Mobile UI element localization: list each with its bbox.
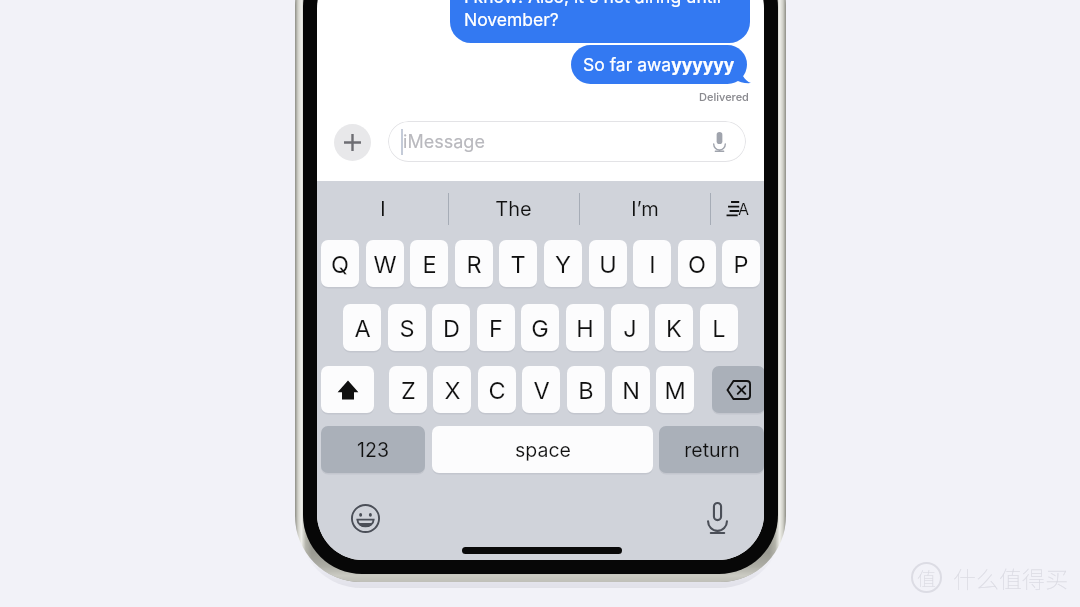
button[interactable]: Y [544, 240, 582, 287]
button[interactable]: Shift [321, 366, 374, 413]
button[interactable]: H [566, 304, 604, 351]
staticText: Q [331, 250, 349, 278]
button[interactable]: iMessage [388, 121, 746, 162]
button[interactable]: Q [321, 240, 359, 287]
button[interactable]: S [388, 304, 426, 351]
button[interactable]: I [317, 181, 448, 236]
button[interactable]: E [410, 240, 448, 287]
staticText: 值 [917, 564, 937, 592]
button[interactable]: O [678, 240, 716, 287]
button[interactable]: The [448, 181, 579, 236]
button[interactable]: R [455, 240, 493, 287]
button[interactable]: 123 [321, 426, 425, 473]
staticText: H [576, 314, 594, 342]
button[interactable]: W [366, 240, 404, 287]
button[interactable]: Delete [712, 366, 764, 413]
staticText: V [533, 376, 550, 404]
staticText: Delivered [699, 90, 749, 103]
staticText: I’m [631, 197, 659, 221]
staticText: A [354, 314, 371, 342]
button[interactable]: D [432, 304, 470, 351]
staticText: O [688, 250, 706, 278]
button[interactable]: B [567, 366, 605, 413]
staticText: B [578, 376, 594, 404]
button[interactable]: K [655, 304, 693, 351]
staticText: 什么值得买 [953, 561, 1068, 594]
staticText: G [531, 314, 549, 342]
staticText: T [510, 250, 526, 278]
button[interactable]: Add attachment [334, 124, 371, 161]
button[interactable]: I [633, 240, 671, 287]
other: Dictate [708, 131, 730, 153]
staticText: 123 [357, 438, 389, 462]
staticText: K [666, 314, 682, 342]
button[interactable]: P [722, 240, 760, 287]
staticText: return [684, 438, 740, 462]
button[interactable]: Formatting [710, 181, 764, 236]
staticText: P [733, 250, 749, 278]
button[interactable]: V [522, 366, 560, 413]
staticText: X [444, 376, 461, 404]
staticText: L [712, 314, 726, 342]
button[interactable]: space [432, 426, 653, 473]
button[interactable]: M [656, 366, 694, 413]
button[interactable]: Emoji [349, 502, 382, 535]
button[interactable]: return [659, 426, 764, 473]
button[interactable]: A [343, 304, 381, 351]
button[interactable]: I’m [579, 181, 710, 236]
button[interactable]: J [611, 304, 649, 351]
staticText: E [422, 250, 437, 278]
staticText: I [380, 197, 386, 221]
staticText: U [599, 250, 617, 278]
staticText: iMessage [403, 131, 485, 153]
staticText: A [738, 199, 750, 218]
staticText: N [622, 376, 640, 404]
button[interactable]: U [589, 240, 627, 287]
staticText: Y [555, 250, 571, 278]
button[interactable]: N [612, 366, 650, 413]
button[interactable]: T [499, 240, 537, 287]
button[interactable]: L [700, 304, 738, 351]
staticText: J [623, 314, 637, 342]
staticText: D [443, 314, 460, 342]
button[interactable]: Dictation [701, 498, 734, 538]
button[interactable]: Z [389, 366, 427, 413]
staticText: I know! Also, it's not airing until Nove… [464, 0, 721, 31]
button[interactable]: C [478, 366, 516, 413]
staticText: So far awayyyyyy [583, 54, 735, 75]
staticText: The [495, 197, 532, 221]
staticText: space [515, 438, 571, 462]
staticText: S [399, 314, 415, 342]
staticText: W [373, 250, 397, 278]
button[interactable]: F [477, 304, 515, 351]
button[interactable]: G [521, 304, 559, 351]
staticText: Z [401, 376, 416, 404]
staticText: C [488, 376, 506, 404]
button[interactable]: X [433, 366, 471, 413]
staticText: I [649, 250, 656, 278]
staticText: M [664, 376, 686, 404]
staticText: R [466, 250, 482, 278]
staticText: F [489, 314, 503, 342]
